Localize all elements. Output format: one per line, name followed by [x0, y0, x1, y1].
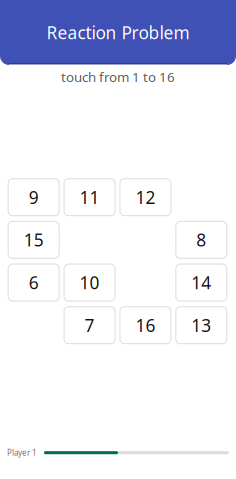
- staticText: 13: [191, 314, 211, 337]
- staticText: Reaction Problem: [46, 21, 189, 44]
- staticText: 11: [80, 186, 100, 209]
- button[interactable]: 16: [120, 307, 171, 344]
- staticText: touch from 1 to 16: [61, 68, 175, 86]
- staticText: Player 1: [7, 447, 37, 458]
- button[interactable]: 15: [8, 221, 59, 258]
- button[interactable]: 6: [8, 264, 59, 301]
- button[interactable]: 11: [64, 179, 115, 216]
- button[interactable]: 14: [176, 264, 227, 301]
- button[interactable]: 12: [120, 179, 171, 216]
- staticText: 14: [191, 271, 211, 294]
- staticText: 8: [196, 228, 206, 251]
- staticText: 7: [85, 314, 95, 337]
- button[interactable]: 9: [8, 179, 59, 216]
- staticText: 10: [80, 271, 100, 294]
- staticText: 15: [24, 228, 44, 251]
- staticText: 9: [29, 186, 39, 209]
- staticText: 6: [29, 271, 39, 294]
- staticText: 12: [135, 186, 155, 209]
- button[interactable]: 7: [64, 307, 115, 344]
- staticText: 16: [135, 314, 155, 337]
- button[interactable]: 13: [176, 307, 227, 344]
- button[interactable]: 8: [176, 221, 227, 258]
- button[interactable]: 10: [64, 264, 115, 301]
